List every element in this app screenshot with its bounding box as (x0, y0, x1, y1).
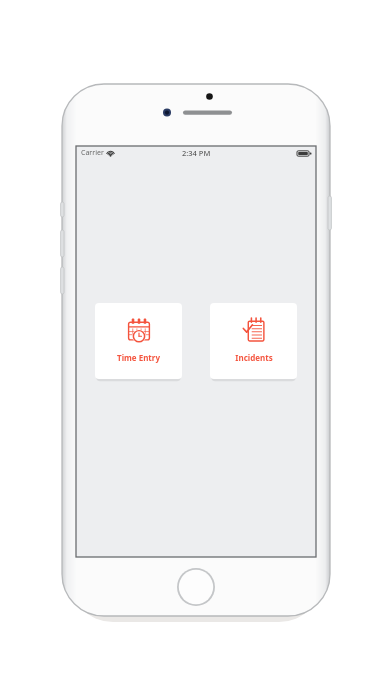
button[interactable]: Time Entry (95, 303, 182, 379)
staticText: Incidents (235, 352, 273, 363)
button[interactable]: Incidents (210, 303, 297, 379)
other: Time Entry (126, 317, 152, 343)
staticText: 2:34 PM (182, 148, 211, 158)
staticText: Time Entry (117, 352, 160, 363)
staticText: Carrier (81, 148, 104, 158)
other: Incidents (241, 317, 267, 343)
